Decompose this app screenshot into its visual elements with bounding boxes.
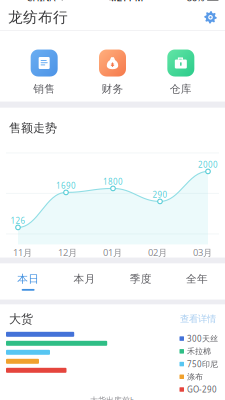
staticText: 售额走势 [9, 121, 57, 135]
button[interactable]: 本月 [56, 264, 112, 300]
staticText: 300天丝 [187, 333, 218, 344]
staticText: 01月 [103, 246, 122, 259]
staticText: 季度 [130, 272, 152, 285]
staticText: 大货出库前5 [90, 395, 135, 400]
staticText: 03月 [193, 246, 212, 259]
staticText: 1690 [56, 180, 76, 191]
button[interactable]: 季度 [112, 264, 169, 300]
staticText: 11月 [13, 246, 32, 259]
button[interactable]: 销售 [10, 49, 78, 96]
staticText: 86% [187, 0, 205, 4]
staticText: 查看详情 [180, 313, 216, 325]
button[interactable]: 查看详情 [180, 313, 216, 325]
staticText: 仓库 [170, 82, 192, 96]
button[interactable]: 全年 [169, 264, 225, 300]
button[interactable]: 本日 [0, 264, 56, 300]
staticText: 02月 [148, 246, 167, 259]
staticText: 销售 [33, 82, 55, 96]
staticText: 290 [152, 189, 167, 200]
staticText: 126 [10, 215, 25, 226]
staticText: 1800 [103, 176, 123, 187]
staticText: CHINA [26, 0, 55, 4]
staticText: 4:21 PM [109, 0, 144, 4]
staticText: GO-290 [187, 384, 217, 395]
staticText: 本月 [73, 272, 95, 285]
staticText: 12月 [58, 246, 77, 259]
staticText: 龙纺布行 [8, 8, 68, 26]
button[interactable]: Settings [204, 11, 217, 24]
staticText: 2000 [198, 159, 218, 170]
staticText: 大货 [9, 312, 33, 326]
staticText: 涤布 [187, 372, 203, 382]
button[interactable]: 仓库 [147, 49, 215, 96]
staticText: 全年 [186, 272, 208, 285]
staticText: 本日 [17, 272, 39, 285]
staticText: 财务 [101, 82, 123, 96]
staticText: 禾拉棉 [187, 346, 211, 356]
staticText: 750印尼 [187, 359, 218, 369]
button[interactable]: 财务 [78, 49, 147, 96]
